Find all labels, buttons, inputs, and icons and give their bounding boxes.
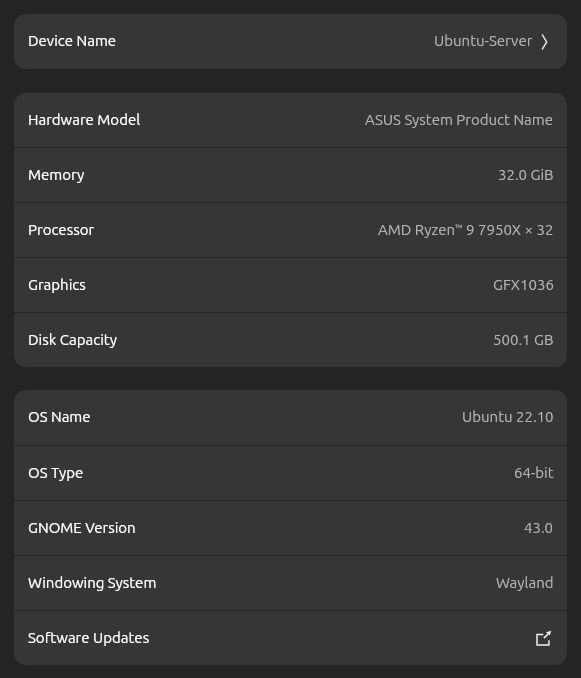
staticText: Device Name — [28, 32, 117, 49]
button[interactable]: OS Type — [14, 446, 567, 500]
other: Open Software Updates — [537, 631, 552, 646]
staticText: Memory — [28, 166, 85, 183]
button[interactable]: GNOME Version — [14, 501, 567, 555]
staticText: GNOME Version — [28, 519, 136, 536]
button[interactable]: Disk Capacity — [14, 313, 567, 367]
staticText: Disk Capacity — [28, 331, 117, 348]
button[interactable]: OS Name — [14, 390, 567, 445]
staticText: 64-bit — [514, 464, 554, 481]
staticText: Ubuntu-Server — [434, 32, 533, 49]
staticText: Ubuntu 22.10 — [462, 408, 554, 425]
staticText: Wayland — [496, 574, 554, 591]
staticText: ASUS System Product Name — [365, 111, 554, 128]
button[interactable]: Hardware Model — [14, 93, 567, 147]
button[interactable]: Windowing System — [14, 556, 567, 610]
button[interactable]: Processor — [14, 203, 567, 257]
staticText: 43.0 — [524, 519, 554, 536]
button[interactable]: Device Name — [14, 14, 567, 69]
staticText: OS Type — [28, 464, 84, 481]
staticText: Software Updates — [28, 629, 150, 646]
staticText: Windowing System — [28, 574, 157, 591]
staticText: OS Name — [28, 408, 91, 425]
staticText: 500.1 GB — [493, 331, 554, 348]
staticText: 32.0 GiB — [498, 166, 554, 183]
staticText: Hardware Model — [28, 111, 141, 128]
button[interactable]: Graphics — [14, 258, 567, 312]
staticText: AMD Ryzen™ 9 7950X × 32 — [378, 221, 554, 238]
other: Open device name settings — [541, 34, 547, 50]
button[interactable]: Software Updates — [14, 611, 567, 665]
staticText: GFX1036 — [493, 276, 554, 293]
staticText: Processor — [28, 221, 95, 238]
button[interactable]: Memory — [14, 148, 567, 202]
staticText: Graphics — [28, 276, 86, 293]
